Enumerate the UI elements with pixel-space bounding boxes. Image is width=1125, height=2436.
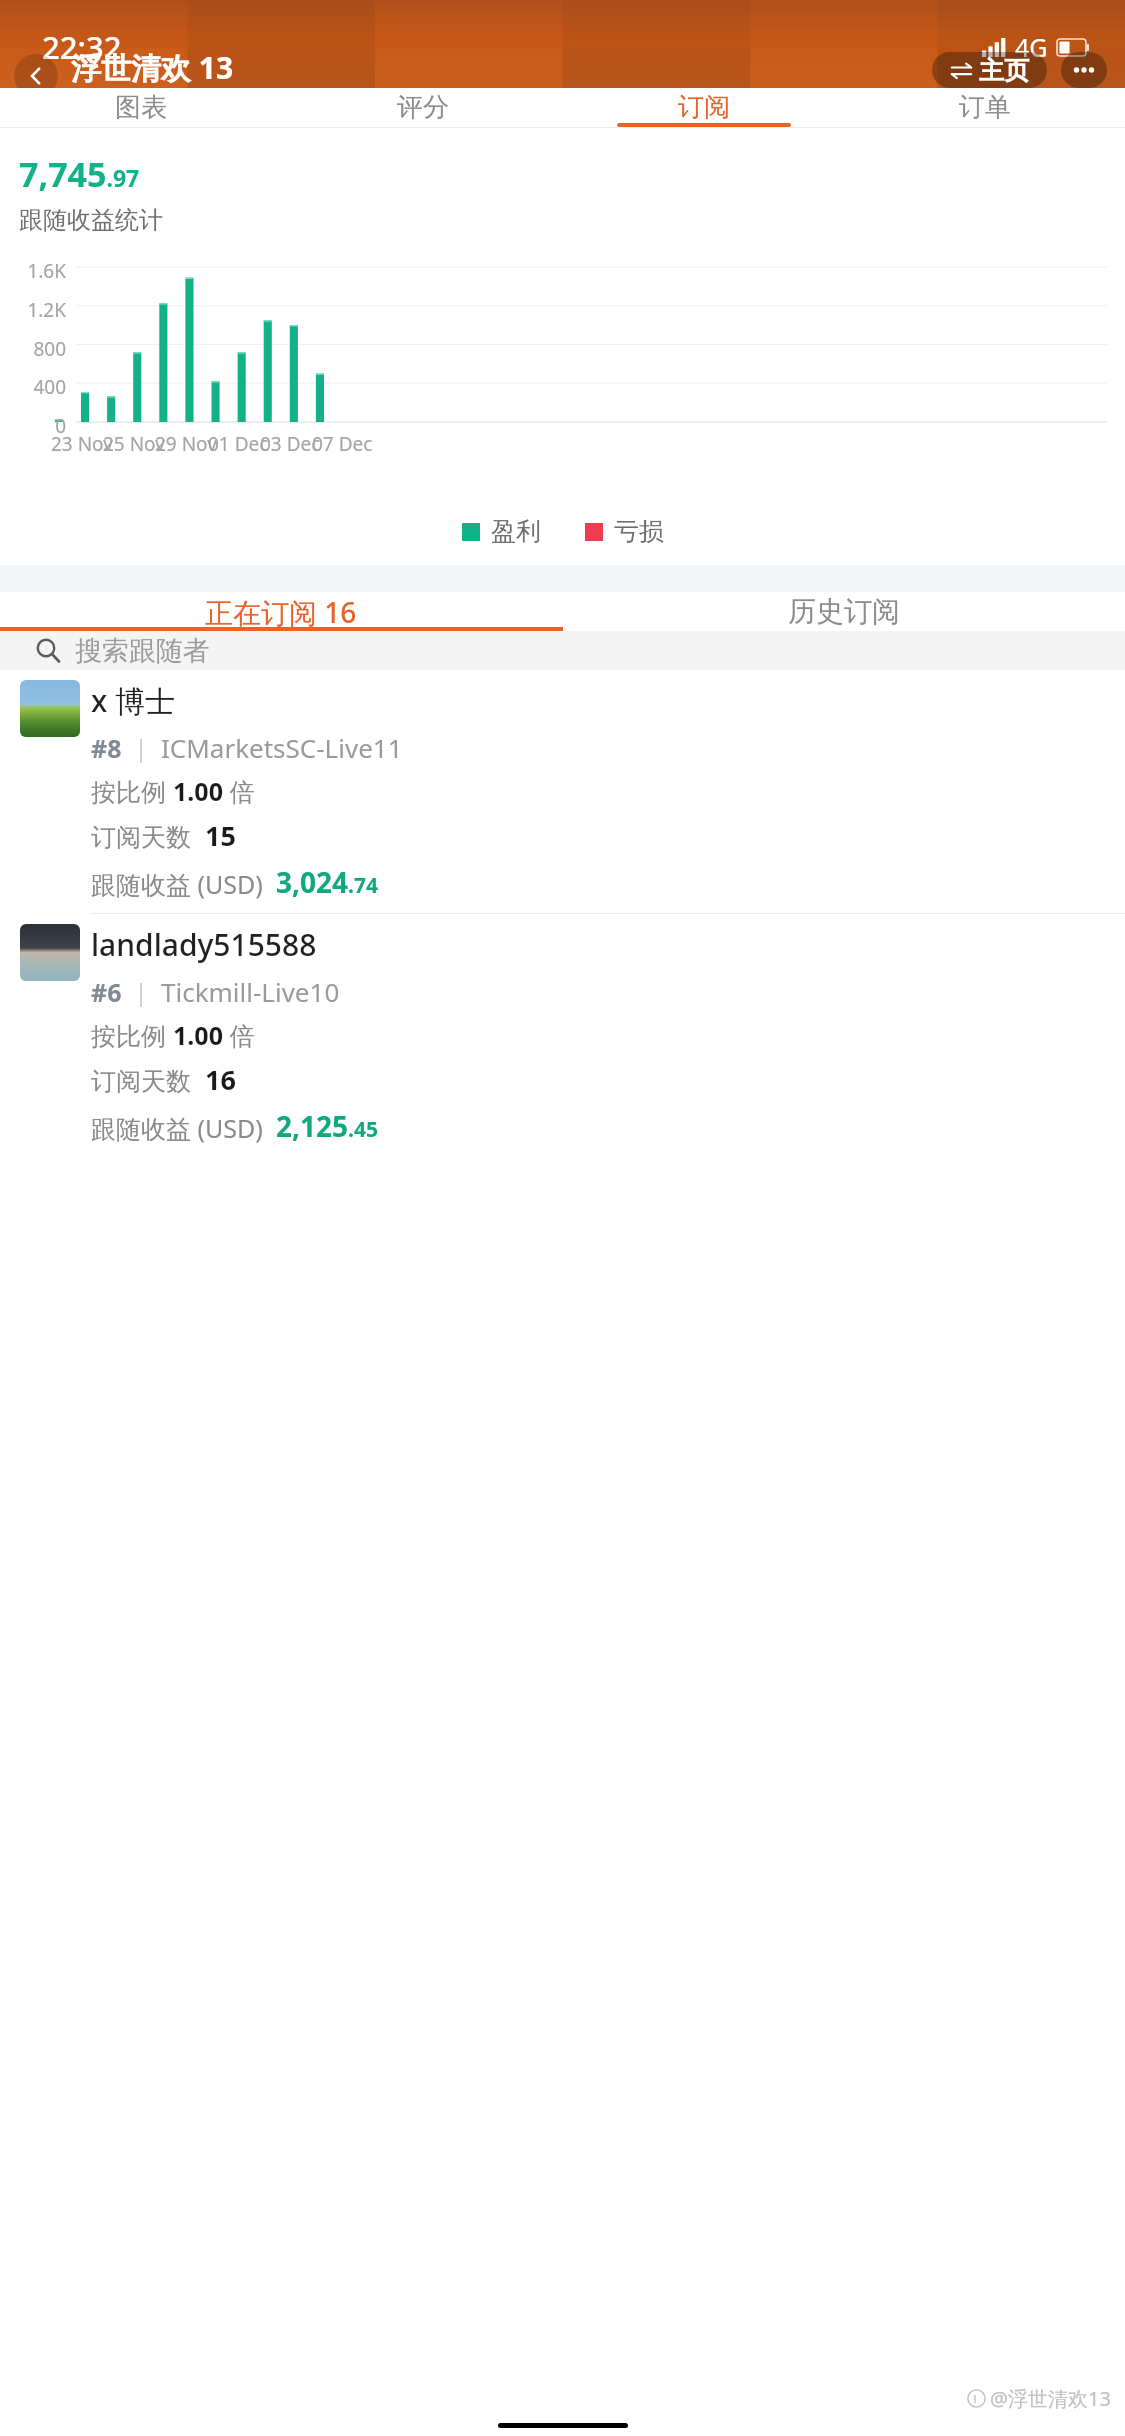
button[interactable]: 正在订阅 16 [0,592,562,631]
staticText: Tickmill-Live10 [161,974,340,1009]
staticText: 跟随收益 (USD) [91,1111,276,1145]
staticText: 1.00 [173,1018,223,1052]
staticText: #6 [91,975,122,1009]
button[interactable]: 订单 [844,88,1125,127]
staticText: 07 Dec [312,431,373,457]
staticText: 图表 [115,91,167,124]
staticText: 正在订阅 16 [205,593,357,631]
staticText: ICMarketsSC-Live11 [161,730,403,765]
staticText: 15 [205,817,236,854]
staticText: 22:32 [42,26,122,68]
staticText: 2,125.45 [276,1107,378,1145]
staticText: 03 Dec [260,431,321,457]
staticText: 800 [16,336,66,362]
staticText: #3 ICMarketsSC-Live11 [71,93,332,124]
staticText: 订阅天数 [91,1063,205,1097]
staticText: 评分 [397,91,449,124]
button[interactable]: landlady515588 [0,913,1125,1157]
button[interactable]: 订阅 [563,88,844,127]
staticText: 7,745.97 [19,151,140,197]
staticText: x 博士 [91,680,176,721]
staticText: 按比例 [91,774,173,808]
button[interactable]: 图表 [0,88,282,127]
staticText: 0 [16,413,66,439]
staticText: #8 [91,731,122,765]
staticText: 按比例 [91,1018,173,1052]
staticText: 亏损 [614,516,664,547]
staticText: 订单 [959,91,1011,124]
staticText: 订阅天数 [91,819,205,853]
staticText: 400 [16,374,66,400]
button[interactable]: x 博士 [0,670,1125,913]
staticText: | [122,731,161,764]
staticText: 4G [1015,30,1048,64]
staticText: 订阅 [678,91,730,124]
staticText: 16 [205,1061,236,1098]
button[interactable]: Back [14,54,58,98]
staticText: landlady515588 [91,924,317,965]
staticText: 盈利 [491,516,541,547]
staticText: 跟随收益 (USD) [91,867,276,901]
staticText: 跟随收益统计 [19,205,163,235]
staticText: 23 Nov [51,431,113,457]
staticText: 01 Dec [208,431,269,457]
staticText: 浮世清欢 13 [71,47,234,88]
staticText: 1.6K [16,258,66,284]
staticText: @浮世清欢13 [990,2385,1111,2412]
button[interactable]: 历史订阅 [562,592,1125,631]
staticText: | [122,975,161,1008]
button[interactable]: 主页 [932,52,1047,88]
staticText: 倍 [223,1018,255,1052]
button[interactable]: 搜索跟随者 [0,631,1125,670]
staticText: 1.2K [16,297,66,323]
staticText: 搜索跟随者 [75,634,210,668]
staticText: 倍 [223,774,255,808]
staticText: 29 Nov [155,431,217,457]
staticText: 3,024.74 [276,863,378,901]
staticText: 25 Nov [103,431,165,457]
staticText: 1.00 [173,774,223,808]
staticText: 主页 [979,55,1029,86]
button[interactable]: More options [1061,52,1107,88]
staticText: 历史订阅 [788,594,900,629]
button[interactable]: 评分 [282,88,563,127]
